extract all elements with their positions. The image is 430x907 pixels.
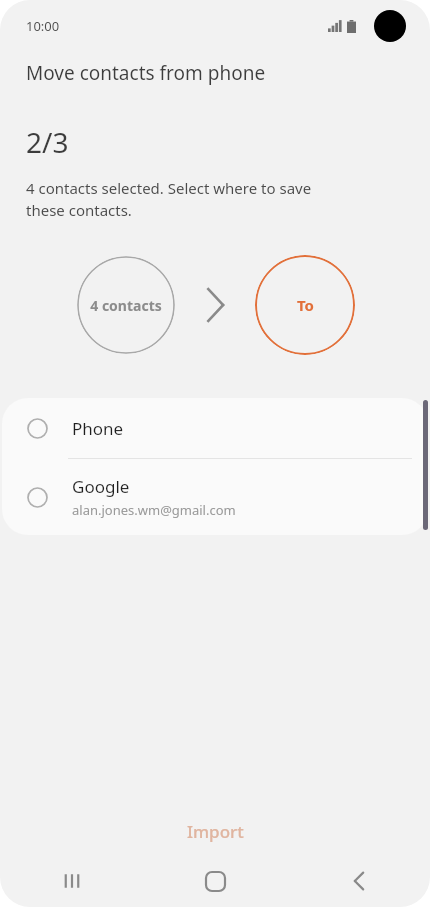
button[interactable]: Import (161, 810, 270, 853)
button[interactable]: Phone (2, 398, 428, 458)
staticText: Import (187, 820, 244, 843)
button[interactable]: Google (2, 459, 428, 535)
button[interactable]: Home (144, 855, 287, 907)
staticText: To (297, 295, 314, 315)
staticText: 10:00 (26, 17, 60, 35)
staticText: 4 contacts selected. Select where to sav… (26, 178, 312, 221)
staticText: Phone (72, 417, 124, 440)
staticText: 2/3 (26, 123, 69, 161)
button[interactable]: 4 contacts (77, 256, 175, 354)
button[interactable]: Recent apps (0, 855, 144, 907)
staticText: alan.jones.wm@gmail.com (72, 501, 236, 519)
button[interactable]: To (255, 255, 355, 355)
staticText: Move contacts from phone (26, 60, 266, 86)
staticText: 4 contacts (90, 296, 162, 315)
staticText: Google (72, 475, 130, 498)
button[interactable]: Back (287, 855, 430, 907)
